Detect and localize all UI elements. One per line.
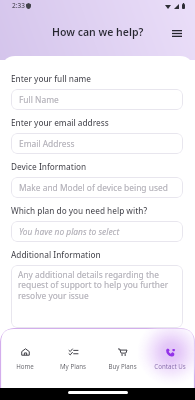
staticText: Enter your email address xyxy=(11,117,109,128)
button[interactable]: My Plans xyxy=(50,345,96,373)
staticText: Additional Information xyxy=(11,249,101,260)
button[interactable]: Buy Plans xyxy=(99,345,145,373)
button[interactable]: Make and Model of device being used xyxy=(11,177,183,198)
button[interactable]: Any additional details regarding the req… xyxy=(11,265,183,328)
button[interactable]: Contact Us xyxy=(147,345,193,373)
staticText: Make and Model of device being used xyxy=(19,182,168,193)
button[interactable]: Menu xyxy=(168,24,186,42)
staticText: Email Address xyxy=(19,138,75,149)
button[interactable]: Home xyxy=(2,345,48,373)
staticText: Full Name xyxy=(19,94,59,105)
staticText: Which plan do you need help with? xyxy=(11,205,148,216)
staticText: Contact Us xyxy=(154,362,186,370)
staticText: Enter your full name xyxy=(11,73,92,84)
staticText: My Plans xyxy=(60,362,86,370)
staticText: Home xyxy=(16,362,34,370)
staticText: Buy Plans xyxy=(108,362,137,370)
staticText: You have no plans to select xyxy=(19,226,120,237)
staticText: How can we help? xyxy=(52,25,144,39)
button[interactable]: You have no plans to select xyxy=(11,221,183,242)
staticText: 2:33 xyxy=(12,1,25,10)
button[interactable]: Email Address xyxy=(11,133,183,154)
button[interactable]: Full Name xyxy=(11,89,183,110)
staticText: Any additional details regarding the req… xyxy=(18,269,174,302)
staticText: Device Information xyxy=(11,161,87,172)
